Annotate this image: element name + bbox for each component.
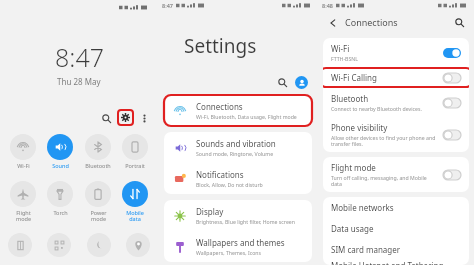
button[interactable]: Wallpapers and themes (164, 231, 312, 262)
button[interactable]: Mobile networks (323, 197, 469, 218)
staticText: Flight mode (331, 162, 376, 173)
staticText: Connect to nearby Bluetooth devices. (331, 105, 422, 112)
button[interactable]: Wi-Fi Calling (323, 67, 469, 88)
button[interactable]: SIM card manager (323, 239, 469, 260)
staticText: Mobile data (126, 209, 144, 223)
button[interactable]: Bluetooth (323, 88, 469, 117)
staticText: Sounds and vibration (196, 138, 276, 149)
staticText: Connections (345, 16, 398, 28)
staticText: 8:47 (162, 2, 173, 9)
staticText: Settings (184, 33, 257, 59)
staticText: Connections (196, 101, 243, 112)
button[interactable]: Settings (117, 109, 134, 126)
staticText: Power mode (90, 209, 107, 223)
staticText: Allow other devices to find your phone a… (331, 134, 437, 147)
staticText: Turn off calling, messaging, and Mobile … (331, 174, 437, 187)
staticText: SIM card manager (331, 244, 401, 255)
staticText: Portrait (125, 162, 145, 169)
button[interactable]: Sounds and vibration (164, 132, 312, 163)
staticText: Wallpapers, Themes, Icons (196, 249, 261, 256)
button[interactable]: Quick toggle 4 (126, 233, 150, 257)
button[interactable]: Portrait (118, 134, 152, 169)
button[interactable]: Search (452, 15, 466, 29)
button[interactable]: Power mode (81, 181, 115, 223)
button[interactable]: Flight mode (323, 157, 469, 192)
button[interactable]: Account (295, 76, 308, 89)
staticText: 8:48 (322, 2, 333, 9)
button[interactable]: Quick toggle 3 (87, 233, 111, 257)
button[interactable]: Search (275, 75, 289, 89)
staticText: Thu 28 May (57, 76, 101, 87)
button[interactable]: Quick toggle 1 (8, 233, 32, 257)
button[interactable]: Quick toggle 2 (47, 233, 71, 257)
staticText: Flight mode (16, 209, 31, 223)
button[interactable]: Notifications (164, 163, 312, 194)
staticText: Notifications (196, 169, 244, 180)
button[interactable]: Bluetooth (81, 134, 115, 169)
staticText: Wi-Fi (17, 162, 30, 169)
button[interactable]: Search (99, 111, 113, 125)
button[interactable]: More options (138, 112, 150, 124)
button[interactable]: Wi-Fi (6, 134, 40, 169)
button[interactable]: Flight mode (6, 181, 40, 223)
staticText: Mobile networks (331, 202, 394, 213)
staticText: Wi-Fi, Bluetooth, Data usage, Flight mod… (196, 113, 297, 120)
staticText: Mobile Hotspot and Tethering (331, 260, 444, 265)
button[interactable]: Sound (43, 134, 77, 169)
button[interactable]: Back (326, 16, 339, 29)
staticText: Bluetooth (331, 93, 369, 104)
staticText: Torch (53, 209, 68, 216)
staticText: Phone visibility (331, 122, 388, 133)
button[interactable]: Torch (43, 181, 77, 216)
staticText: 8:47 (55, 40, 104, 74)
button[interactable]: Phone visibility (323, 117, 469, 152)
staticText: Wallpapers and themes (196, 237, 285, 248)
staticText: Wi-Fi (331, 43, 350, 54)
button[interactable]: Mobile Hotspot and Tethering (323, 260, 469, 265)
staticText: Block, Allow, Do not disturb (196, 181, 263, 188)
staticText: Data usage (331, 223, 374, 234)
button[interactable]: Mobile data (118, 181, 152, 223)
button[interactable]: Data usage (323, 218, 469, 239)
staticText: FTTH-BSNL (331, 55, 358, 62)
staticText: Wi-Fi Calling (331, 72, 377, 83)
staticText: Bluetooth (85, 162, 111, 169)
staticText: Sound (52, 162, 69, 169)
staticText: Brightness, Blue light filter, Home scre… (196, 218, 295, 225)
staticText: Sound mode, Ringtone, Volume (196, 150, 274, 157)
button[interactable]: Connections (164, 95, 312, 126)
button[interactable]: Wi-Fi (323, 38, 469, 67)
button[interactable]: Display (164, 200, 312, 231)
staticText: Display (196, 206, 224, 217)
